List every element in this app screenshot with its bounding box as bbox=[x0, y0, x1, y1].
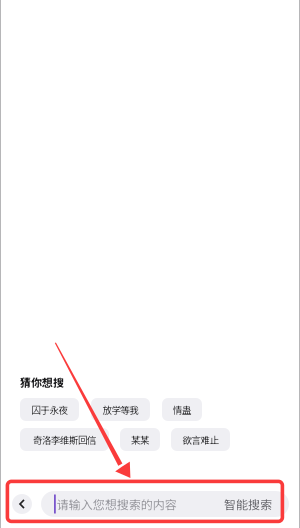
button[interactable]: 请输入您想搜索的内容 bbox=[41, 491, 289, 517]
staticText: 放学等我 bbox=[102, 403, 138, 416]
staticText: 欲言难止 bbox=[182, 433, 218, 446]
staticText: 囚于永夜 bbox=[31, 403, 67, 416]
staticText: 智能搜索 bbox=[224, 495, 272, 513]
button[interactable]: 放学等我 bbox=[91, 398, 150, 421]
button[interactable]: 情蛊 bbox=[162, 398, 202, 421]
button[interactable]: Back bbox=[12, 494, 32, 514]
staticText: 奇洛李维斯回信 bbox=[33, 433, 96, 446]
button[interactable]: 囚于永夜 bbox=[20, 398, 79, 421]
staticText: 猜你想搜 bbox=[20, 374, 64, 390]
staticText: 请输入您想搜索的内容 bbox=[57, 495, 177, 513]
staticText: 情蛊 bbox=[173, 403, 191, 416]
button[interactable]: 某某 bbox=[120, 428, 160, 451]
button[interactable]: 欲言难止 bbox=[171, 428, 230, 451]
button[interactable]: 奇洛李维斯回信 bbox=[20, 428, 109, 451]
staticText: 某某 bbox=[131, 433, 149, 446]
